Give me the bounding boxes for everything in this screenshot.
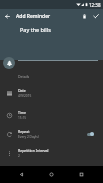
staticText: 12:38 <box>89 2 101 8</box>
staticText: Every 2 Day(s) <box>18 135 39 139</box>
staticText: Details <box>18 74 30 79</box>
button[interactable]: Repetition Interval <box>0 145 103 161</box>
button[interactable]: Repeat toggle <box>87 130 95 138</box>
button[interactable]: Repeat <box>0 126 103 142</box>
staticText: 15:15 <box>18 116 27 120</box>
staticText: Pay the bills <box>20 26 51 33</box>
staticText: Time <box>18 110 27 115</box>
button[interactable]: Back <box>13 166 30 183</box>
button[interactable]: Delete reminder <box>77 9 91 23</box>
staticText: Date <box>18 88 26 93</box>
button[interactable]: Time <box>0 107 103 123</box>
staticText: Add Reminder <box>16 13 51 20</box>
staticText: 2 <box>18 154 20 158</box>
button[interactable]: Navigate up <box>0 9 14 23</box>
button[interactable]: Home <box>43 166 60 183</box>
staticText: Repetition Interval <box>18 148 49 153</box>
button[interactable]: Recent apps <box>73 166 90 183</box>
button[interactable]: Save reminder <box>89 9 103 23</box>
staticText: Repeat <box>18 129 30 134</box>
button[interactable]: Date <box>0 85 103 101</box>
button[interactable]: Reminder type <box>3 57 15 69</box>
staticText: 4/9/2015 <box>18 94 32 98</box>
